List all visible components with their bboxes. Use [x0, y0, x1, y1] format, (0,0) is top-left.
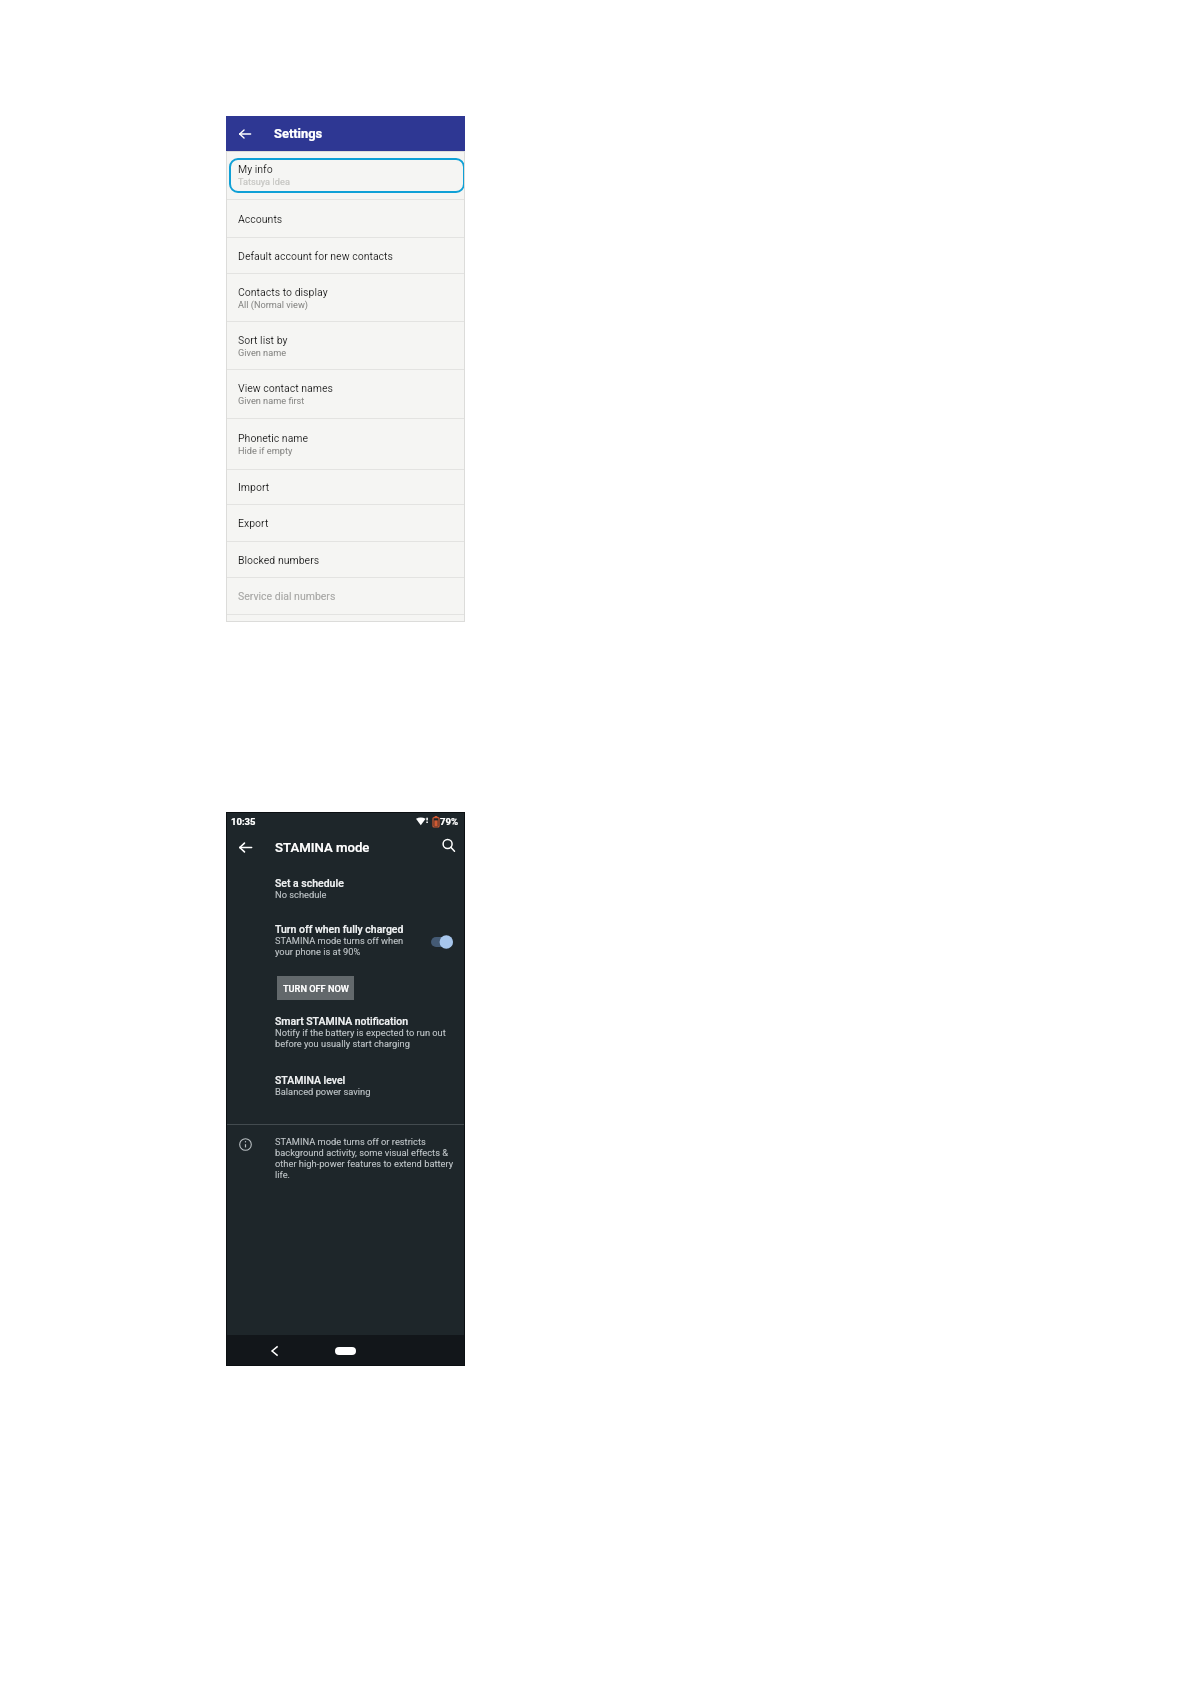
staticText: STAMINA mode [275, 840, 370, 855]
button[interactable]: Back [262, 1335, 287, 1366]
button[interactable]: My info [226, 151, 465, 199]
staticText: 10:35 [231, 816, 256, 827]
button[interactable]: Back [226, 116, 264, 151]
button[interactable]: Turn off when fully charged [226, 922, 465, 957]
button[interactable]: Home [335, 1347, 356, 1355]
staticText: TURN OFF NOW [283, 983, 349, 994]
button[interactable]: Back [233, 830, 258, 864]
staticText: Contacts to display [238, 286, 328, 299]
staticText: Given name [238, 347, 287, 358]
button[interactable]: Turn off when fully charged toggle [431, 935, 453, 949]
button[interactable]: STAMINA level [226, 1073, 465, 1097]
button[interactable]: Smart STAMINA notification [226, 1014, 465, 1049]
button[interactable]: Phonetic name [226, 419, 465, 469]
staticText: Service dial numbers [238, 590, 336, 602]
staticText: STAMINA mode turns off or restricts back… [275, 1137, 458, 1181]
staticText: Accounts [238, 213, 283, 225]
staticText: View contact names [238, 382, 333, 395]
staticText: My info [238, 163, 273, 175]
staticText: Given name first [238, 395, 305, 406]
button[interactable]: Set a schedule [226, 874, 465, 902]
button[interactable]: TURN OFF NOW [277, 976, 354, 1000]
staticText: 79% [440, 816, 459, 827]
button[interactable]: Blocked numbers [226, 542, 465, 577]
staticText: No schedule [275, 889, 327, 900]
button[interactable]: Service dial numbers [226, 578, 465, 614]
staticText: Set a schedule [275, 876, 344, 889]
button[interactable]: Import [226, 470, 465, 504]
button[interactable]: Export [226, 505, 465, 541]
staticText: Turn off when fully charged [275, 922, 404, 935]
staticText: STAMINA mode turns off when your phone i… [275, 935, 404, 957]
staticText: Tatsuya Idea [238, 176, 290, 187]
staticText: All (Normal view) [238, 299, 309, 310]
staticText: Sort list by [238, 334, 288, 347]
staticText: Settings [274, 126, 323, 141]
staticText: STAMINA level [275, 1073, 346, 1086]
staticText: Export [238, 517, 269, 529]
button[interactable]: View contact names [226, 370, 465, 418]
staticText: Balanced power saving [275, 1086, 371, 1097]
staticText: Default account for new contacts [238, 250, 393, 262]
button[interactable]: Sort list by [226, 322, 465, 369]
button[interactable]: Search [436, 828, 461, 862]
button[interactable]: Accounts [226, 200, 465, 237]
button[interactable]: Default account for new contacts [226, 238, 465, 273]
staticText: Import [238, 481, 270, 493]
staticText: Hide if empty [238, 445, 293, 456]
staticText: Smart STAMINA notification [275, 1014, 408, 1027]
button[interactable]: Contacts to display [226, 274, 465, 321]
staticText: Phonetic name [238, 432, 309, 445]
staticText: Notify if the battery is expected to run… [275, 1027, 446, 1049]
staticText: Blocked numbers [238, 554, 320, 566]
